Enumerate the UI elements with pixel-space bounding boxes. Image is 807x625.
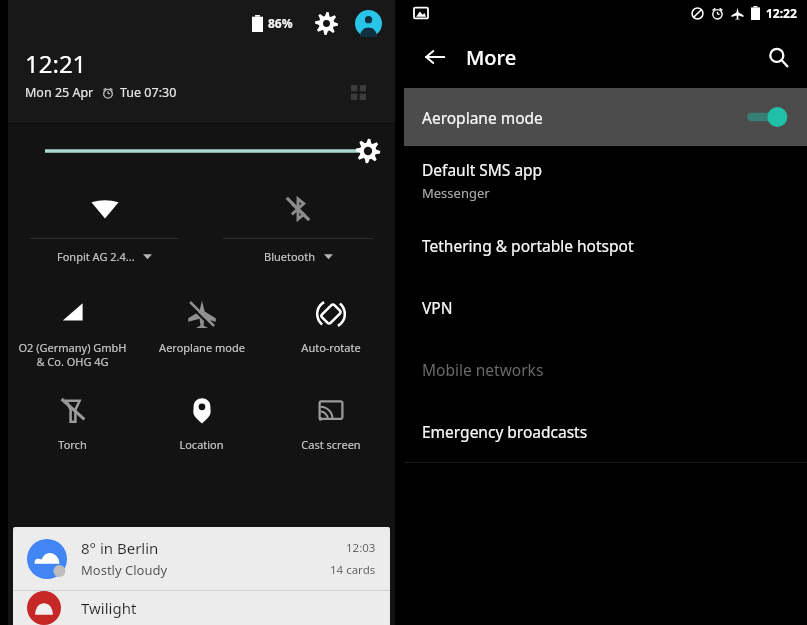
button[interactable]: Mobile networks bbox=[404, 338, 807, 400]
staticText: Cast screen bbox=[301, 437, 361, 452]
staticText: Messenger bbox=[422, 184, 490, 202]
button[interactable]: O2 (Germany) GmbH & Co. OHG 4G bbox=[8, 291, 137, 388]
staticText: Aeroplane mode bbox=[159, 340, 245, 355]
button[interactable]: Cast screen bbox=[266, 388, 395, 488]
button[interactable]: Brightness bbox=[355, 138, 381, 164]
staticText: Emergency broadcasts bbox=[422, 421, 588, 442]
button[interactable]: Fonpit AG 2.4... bbox=[8, 178, 201, 283]
staticText: 12:03 bbox=[346, 540, 376, 556]
staticText: 86% bbox=[268, 15, 293, 31]
button[interactable]: Aeroplane mode bbox=[137, 291, 266, 388]
button[interactable]: Auto-rotate bbox=[266, 291, 395, 388]
button[interactable]: Emergency broadcasts bbox=[404, 400, 807, 462]
staticText: 14 cards bbox=[330, 562, 376, 578]
staticText: Torch bbox=[58, 437, 87, 452]
staticText: 8° in Berlin bbox=[81, 538, 159, 558]
staticText: Mon 25 Apr bbox=[25, 84, 94, 101]
button[interactable]: Back bbox=[404, 26, 466, 88]
button[interactable]: Tethering & portable hotspot bbox=[404, 214, 807, 276]
button[interactable]: Bluetooth bbox=[201, 178, 395, 283]
staticText: Auto-rotate bbox=[301, 340, 361, 355]
staticText: Location bbox=[179, 437, 224, 452]
staticText: Tethering & portable hotspot bbox=[422, 235, 634, 256]
button[interactable]: Default SMS app bbox=[404, 146, 807, 214]
staticText: Mobile networks bbox=[422, 359, 544, 380]
staticText: VPN bbox=[422, 297, 453, 318]
staticText: 12:21 bbox=[25, 47, 87, 80]
staticText: Fonpit AG 2.4... bbox=[57, 249, 135, 264]
staticText: Tue 07:30 bbox=[120, 84, 177, 101]
staticText: Twilight bbox=[81, 598, 137, 618]
staticText: Aeroplane mode bbox=[422, 107, 543, 128]
button[interactable]: Settings bbox=[311, 8, 341, 38]
staticText: Mostly Cloudy bbox=[81, 561, 168, 579]
staticText: Default SMS app bbox=[422, 159, 543, 180]
button[interactable]: Expand quick settings bbox=[347, 81, 369, 103]
button[interactable]: Torch bbox=[8, 388, 137, 488]
button[interactable]: 8° in Berlin bbox=[13, 527, 390, 590]
staticText: O2 (Germany) GmbH & Co. OHG 4G bbox=[18, 340, 127, 369]
button[interactable]: Search bbox=[749, 26, 807, 88]
button[interactable]: VPN bbox=[404, 276, 807, 338]
staticText: 12:22 bbox=[766, 5, 797, 21]
button[interactable]: Aeroplane mode bbox=[404, 88, 807, 146]
staticText: Bluetooth bbox=[264, 249, 316, 264]
button[interactable]: Twilight bbox=[13, 591, 390, 625]
button[interactable]: Location bbox=[137, 388, 266, 488]
button[interactable]: User account bbox=[353, 8, 383, 38]
staticText: More bbox=[466, 44, 517, 71]
